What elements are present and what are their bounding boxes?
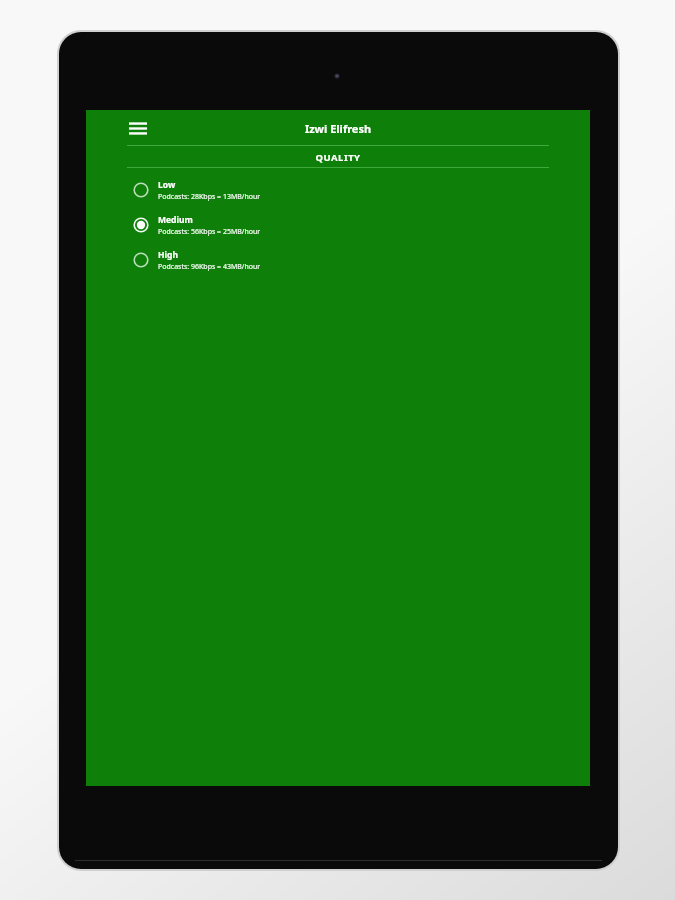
staticText: Low: [158, 179, 176, 191]
staticText: Podcasts: 56Kbps = 25MB/hour: [158, 227, 261, 237]
staticText: Podcasts: 28Kbps = 13MB/hour: [158, 192, 261, 202]
staticText: QUALITY: [127, 151, 549, 164]
staticText: Podcasts: 96Kbps = 43MB/hour: [158, 262, 261, 272]
staticText: High: [158, 249, 178, 261]
button[interactable]: Open navigation menu: [126, 116, 150, 140]
button[interactable]: High: [86, 242, 590, 277]
button[interactable]: Low: [86, 172, 590, 207]
button[interactable]: Medium: [86, 207, 590, 242]
staticText: Izwi Elifresh: [86, 121, 590, 136]
staticText: Medium: [158, 214, 193, 226]
